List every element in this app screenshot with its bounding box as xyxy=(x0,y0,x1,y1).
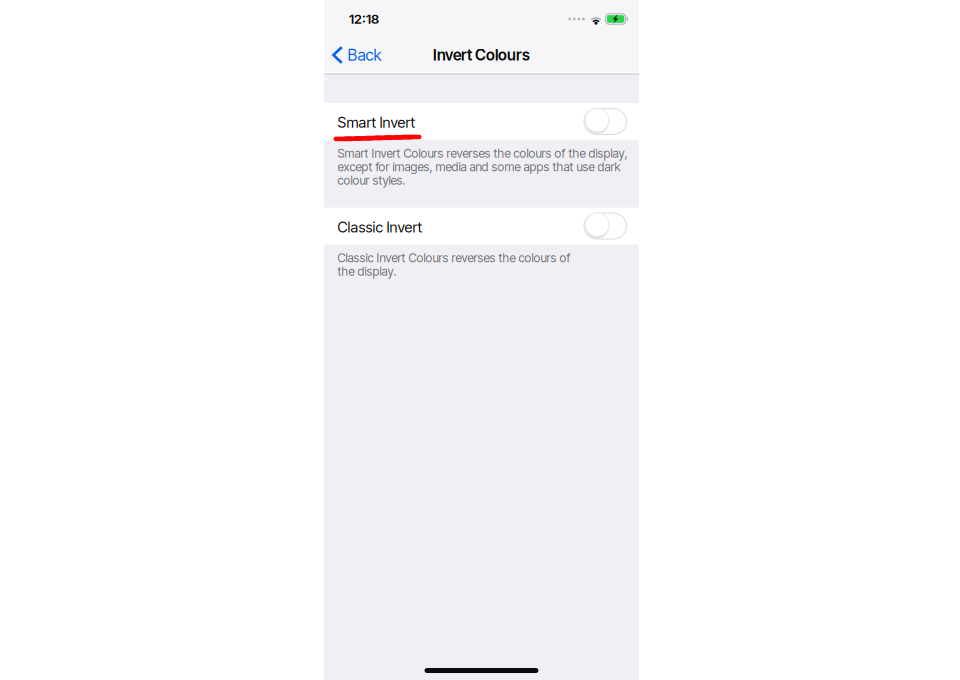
button[interactable]: Smart Invert, off xyxy=(584,108,626,134)
staticText: Back xyxy=(347,45,381,65)
button[interactable]: Smart Invert xyxy=(324,103,639,140)
staticText: Smart Invert Colours reverses the colour… xyxy=(337,146,627,188)
staticText: Invert Colours xyxy=(433,46,530,64)
staticText: 12:18 xyxy=(349,11,379,27)
button[interactable]: Classic Invert, off xyxy=(584,213,626,239)
button[interactable]: Classic Invert xyxy=(324,208,639,245)
staticText: Classic Invert xyxy=(337,218,422,236)
staticText: Classic Invert Colours reverses the colo… xyxy=(337,251,570,279)
staticText: Smart Invert xyxy=(337,114,415,131)
button[interactable]: Back xyxy=(324,36,391,72)
